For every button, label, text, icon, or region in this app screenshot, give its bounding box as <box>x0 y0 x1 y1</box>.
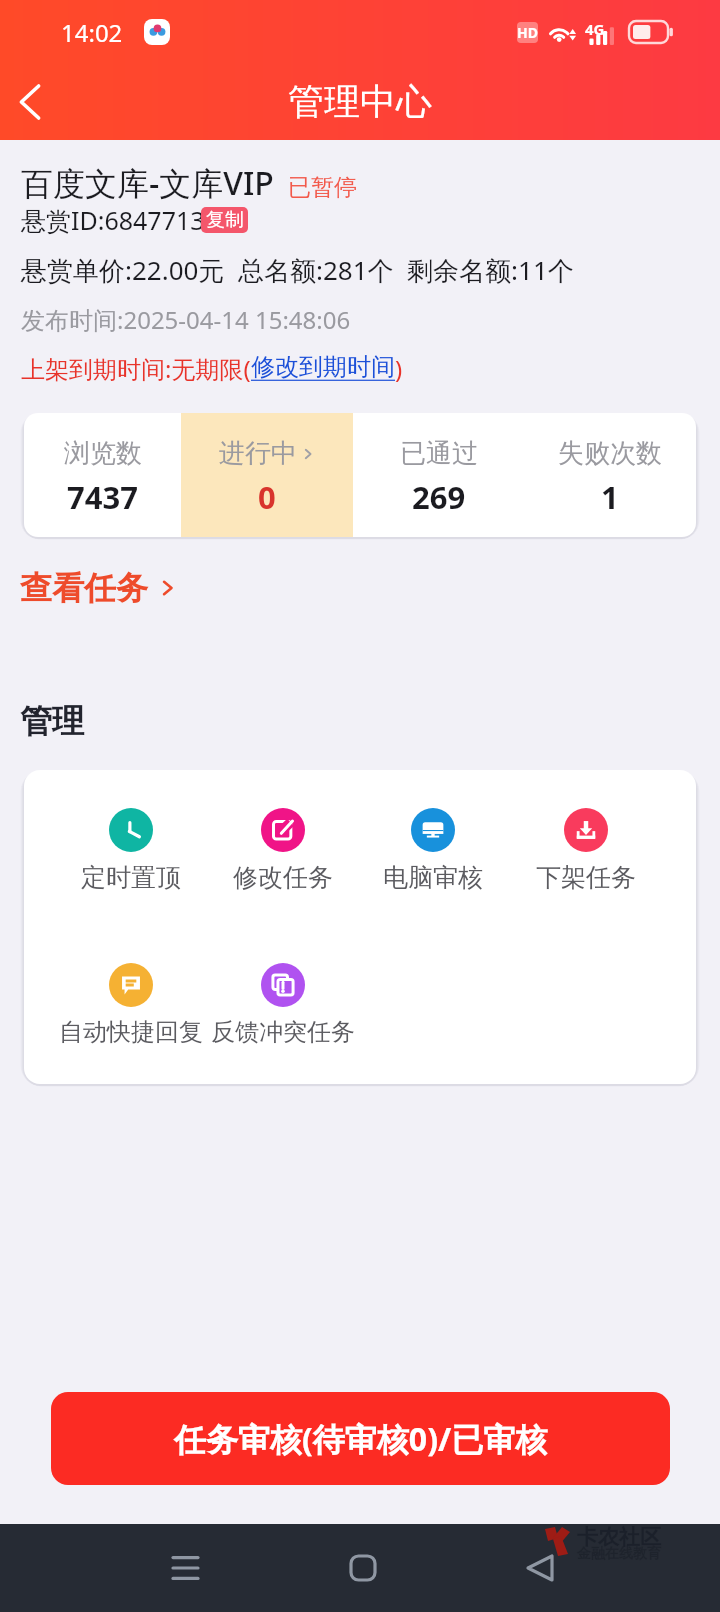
staticText: 已通过 <box>400 437 478 470</box>
staticText: 悬赏单价:22.00元 总名额:281个 剩余名额:11个 <box>21 252 574 288</box>
staticText: ) <box>395 352 403 385</box>
staticText: 金融在线教育 <box>577 1545 661 1563</box>
staticText: 4G <box>585 19 605 39</box>
button[interactable]: 任务审核(待审核0)/已审核 <box>51 1392 670 1485</box>
button[interactable]: 修改任务 <box>208 803 358 893</box>
staticText: HD <box>517 23 538 42</box>
button[interactable]: 查看任务 <box>20 568 179 608</box>
button[interactable]: Back <box>518 1546 562 1590</box>
staticText: 已暂停 <box>288 173 357 202</box>
staticText: 定时置顶 <box>81 862 181 893</box>
staticText: 复制 <box>206 208 244 232</box>
button[interactable]: 定时置顶 <box>56 803 206 893</box>
button[interactable]: 失败次数 <box>524 413 696 537</box>
staticText: 反馈冲突任务 <box>211 1017 355 1047</box>
button[interactable]: 电脑审核 <box>358 803 508 893</box>
staticText: 电脑审核 <box>383 862 483 893</box>
button[interactable]: 进行中 <box>181 413 353 537</box>
staticText: 查看任务 <box>20 568 148 608</box>
staticText: 百度文库-文库VIP <box>21 161 274 205</box>
button[interactable]: Recent apps <box>163 1546 207 1590</box>
staticText: 悬赏ID:6847713 <box>21 203 205 237</box>
staticText: 卡农社区 <box>577 1524 661 1550</box>
staticText: 上架到期时间:无期限( <box>21 352 251 385</box>
staticText: 14:02 <box>61 16 123 49</box>
staticText: 269 <box>412 476 466 518</box>
staticText: 自动快捷回复 <box>59 1017 203 1047</box>
button[interactable]: 已通过 <box>353 413 524 537</box>
button[interactable]: 反馈冲突任务 <box>208 958 358 1047</box>
staticText: 修改任务 <box>233 862 333 893</box>
button[interactable]: 修改到期时间 <box>251 352 395 382</box>
button[interactable]: 浏览数 <box>24 413 181 537</box>
staticText: 进行中 <box>219 437 297 470</box>
button[interactable]: 下架任务 <box>511 803 661 893</box>
button[interactable]: Back <box>2 74 58 130</box>
button[interactable]: 复制 <box>201 207 248 233</box>
staticText: 管理 <box>20 701 84 741</box>
staticText: 任务审核(待审核0)/已审核 <box>174 1417 548 1461</box>
staticText: 1 <box>601 476 619 518</box>
staticText: 失败次数 <box>558 437 662 470</box>
button[interactable]: Home <box>341 1546 385 1590</box>
staticText: 发布时间:2025-04-14 15:48:06 <box>21 303 351 336</box>
staticText: 管理中心 <box>288 79 432 124</box>
staticText: 0 <box>258 476 276 518</box>
staticText: 下架任务 <box>536 862 636 893</box>
button[interactable]: 自动快捷回复 <box>56 958 206 1047</box>
staticText: 7437 <box>67 476 138 518</box>
staticText: 浏览数 <box>64 437 142 470</box>
